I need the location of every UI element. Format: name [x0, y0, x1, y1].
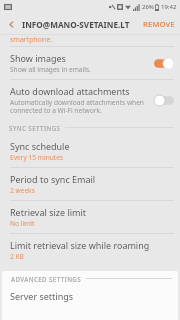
button[interactable]: Back: [0, 14, 22, 34]
staticText: Period to sync Email: [10, 173, 96, 185]
staticText: INFO@MANO-SVETAINE.LT: [22, 19, 138, 30]
button[interactable]: Period to sync Email: [0, 168, 180, 200]
button[interactable]: Show images: [0, 47, 180, 79]
staticText: REMOVE: [143, 19, 175, 30]
button[interactable]: Server settings: [2, 286, 178, 306]
button[interactable]: On: [154, 58, 174, 69]
staticText: Every 15 minutes: [10, 153, 64, 162]
button[interactable]: Retrieval size limit: [0, 201, 180, 233]
staticText: Automatically download attachments when …: [10, 98, 144, 115]
staticText: Show all images in emails.: [10, 65, 91, 74]
button[interactable]: Sync schedule: [0, 135, 180, 167]
staticText: Sync schedule: [10, 140, 70, 152]
staticText: Retrieval size limit: [10, 206, 87, 218]
staticText: ADVANCED SETTINGS: [11, 275, 82, 283]
staticText: Limit retrieval size while roaming: [10, 239, 150, 251]
button[interactable]: Auto download attachments: [0, 80, 180, 120]
staticText: SYNC SETTINGS: [9, 124, 61, 132]
button[interactable]: Off: [154, 95, 174, 106]
staticText: smartphone.: [10, 35, 53, 45]
staticText: Show images: [10, 52, 66, 64]
staticText: No limit: [10, 219, 35, 228]
staticText: 2 KB: [10, 252, 24, 261]
staticText: Auto download attachments: [10, 85, 130, 97]
staticText: Server settings: [10, 290, 74, 302]
button[interactable]: Limit retrieval size while roaming: [0, 234, 180, 266]
staticText: 19:42: [161, 3, 177, 11]
button[interactable]: REMOVE: [138, 14, 180, 34]
staticText: 2 weeks: [10, 186, 35, 195]
staticText: 26%: [142, 3, 154, 11]
